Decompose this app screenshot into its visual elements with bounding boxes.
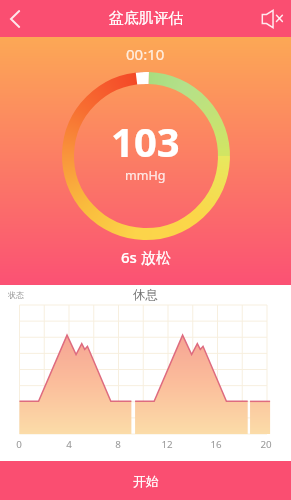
staticText: 6s 放松 [121,247,171,267]
staticText: 休息 [133,287,158,303]
staticText: 4 [57,438,81,451]
staticText: 8 [106,438,130,451]
button[interactable]: Mute [254,0,291,37]
staticText: 103 [111,114,180,168]
staticText: 16 [204,438,228,451]
staticText: 20 [254,438,278,451]
button[interactable]: Back [0,0,30,37]
staticText: 12 [155,438,179,451]
staticText: mmHg [125,167,166,184]
staticText: 状态 [8,290,24,300]
staticText: 00:10 [126,44,165,64]
staticText: 盆底肌评估 [109,9,183,28]
button[interactable]: 开始 [0,461,291,500]
staticText: 0 [7,438,31,451]
staticText: 开始 [133,473,159,489]
